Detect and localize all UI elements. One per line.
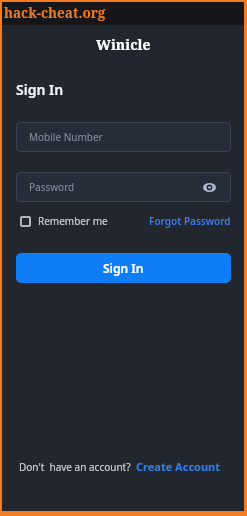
staticText: Winicle xyxy=(96,35,151,54)
staticText: Don't have an account? xyxy=(19,460,131,474)
button[interactable]: Create Account xyxy=(136,459,221,474)
staticText: Sign In xyxy=(103,260,144,276)
button[interactable]: Sign In xyxy=(16,253,231,283)
button[interactable]: Forgot Password xyxy=(149,214,231,228)
staticText: hack-cheat.org xyxy=(4,4,106,22)
staticText: Sign In xyxy=(16,80,64,99)
staticText: Password xyxy=(29,180,75,194)
staticText: Mobile Number xyxy=(29,130,103,144)
button[interactable]: Password xyxy=(16,172,231,202)
staticText: Remember me xyxy=(38,214,108,228)
button[interactable] xyxy=(20,216,31,227)
button[interactable]: Mobile Number xyxy=(16,122,231,152)
